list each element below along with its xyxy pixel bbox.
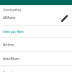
button[interactable]: Action Movies (0, 52, 72, 65)
staticText: At Home (3, 43, 15, 47)
button[interactable]: Comedy (0, 66, 72, 72)
staticText: All Movies (3, 15, 16, 19)
staticText: Action Movies (3, 57, 20, 61)
button[interactable]: Currently watching (0, 5, 72, 25)
staticText: Select your filters (3, 30, 24, 34)
staticText: Currently watching (3, 8, 21, 12)
button[interactable]: Edit (57, 11, 71, 25)
staticText: Comedy (3, 71, 14, 72)
button[interactable]: Select your filters (0, 26, 72, 37)
button[interactable]: At Home (0, 38, 72, 51)
